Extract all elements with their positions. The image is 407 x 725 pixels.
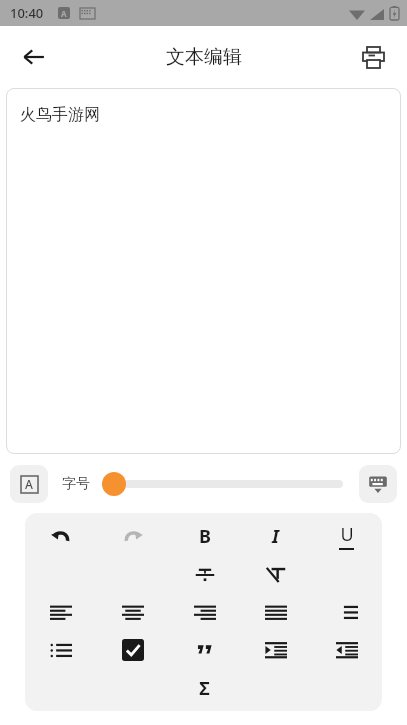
button[interactable]: Font bbox=[10, 465, 48, 503]
button[interactable]: Format bbox=[25, 631, 97, 669]
staticText: Σ bbox=[199, 676, 210, 701]
button[interactable] bbox=[102, 466, 343, 502]
button[interactable]: Hide keyboard bbox=[359, 465, 397, 503]
button[interactable]: 火鸟手游网 bbox=[6, 88, 401, 454]
button[interactable]: Format bbox=[240, 631, 311, 669]
staticText: A bbox=[61, 8, 67, 19]
button[interactable]: Format bbox=[311, 593, 382, 631]
staticText: 字号 bbox=[62, 475, 90, 493]
button[interactable]: I bbox=[240, 517, 311, 555]
button[interactable]: Back bbox=[12, 35, 56, 79]
button[interactable]: Format bbox=[169, 593, 240, 631]
button[interactable]: Format bbox=[240, 593, 311, 631]
button[interactable]: U bbox=[311, 517, 382, 555]
button[interactable]: Format bbox=[169, 631, 240, 669]
staticText: U bbox=[340, 522, 354, 547]
staticText: 火鸟手游网 bbox=[20, 105, 100, 125]
staticText: I bbox=[272, 524, 279, 549]
staticText: B bbox=[199, 524, 211, 549]
button[interactable]: Format bbox=[169, 555, 240, 593]
button[interactable]: Format bbox=[240, 555, 311, 593]
button[interactable]: Format bbox=[97, 593, 169, 631]
button[interactable]: Σ bbox=[169, 669, 240, 707]
button[interactable]: Format bbox=[25, 593, 97, 631]
button[interactable]: Format bbox=[97, 517, 169, 555]
button[interactable]: Format bbox=[311, 631, 382, 669]
button[interactable]: Print bbox=[351, 35, 395, 79]
staticText: A bbox=[25, 476, 33, 492]
staticText: 10:40 bbox=[10, 4, 44, 22]
staticText: 文本编辑 bbox=[166, 45, 242, 69]
button[interactable]: Format bbox=[97, 631, 169, 669]
button[interactable]: B bbox=[169, 517, 240, 555]
button[interactable]: Format bbox=[25, 517, 97, 555]
